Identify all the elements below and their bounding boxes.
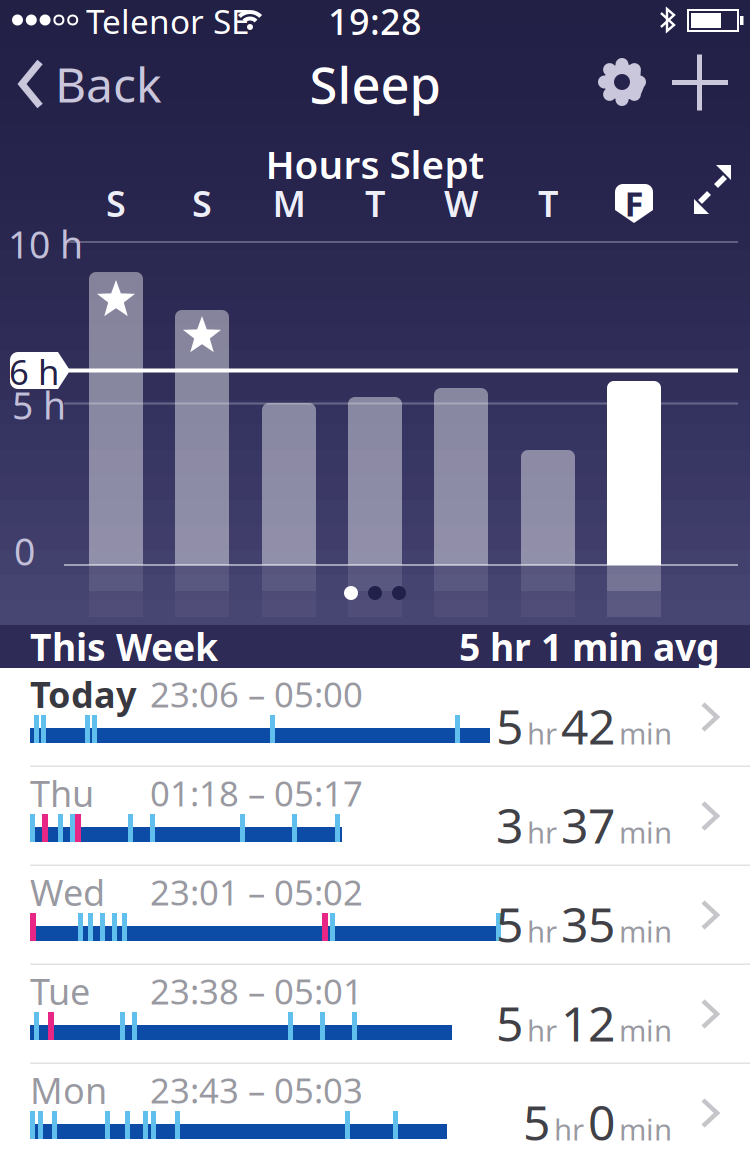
- staticText: 5: [496, 694, 523, 758]
- staticText: Telenor SE: [86, 0, 250, 43]
- staticText: 12: [561, 991, 615, 1055]
- staticText: 23:01 – 05:02: [150, 869, 363, 915]
- staticText: M: [272, 179, 305, 227]
- staticText: 5 hr 1 min avg: [459, 622, 720, 671]
- button[interactable]: Add: [672, 52, 728, 113]
- staticText: min: [619, 1110, 672, 1149]
- staticText: 35: [561, 892, 615, 956]
- staticText: min: [619, 1011, 672, 1050]
- button[interactable]: Wed: [0, 866, 750, 965]
- staticText: 23:38 – 05:01: [150, 968, 363, 1014]
- staticText: This Week: [30, 622, 218, 671]
- staticText: 5: [496, 991, 523, 1055]
- staticText: T: [365, 179, 385, 227]
- staticText: 10 h: [8, 219, 83, 269]
- staticText: Today: [30, 670, 137, 718]
- staticText: 19:28: [328, 0, 422, 45]
- staticText: hr: [527, 912, 557, 951]
- staticText: 42: [561, 694, 615, 758]
- button[interactable]: Expand chart: [694, 162, 734, 218]
- staticText: 5 h: [12, 380, 66, 430]
- staticText: S: [106, 179, 126, 227]
- staticText: hr: [527, 1011, 557, 1050]
- staticText: 6 h: [9, 348, 59, 394]
- staticText: 01:18 – 05:17: [150, 770, 363, 816]
- staticText: Tue: [30, 967, 90, 1015]
- staticText: Back: [55, 52, 162, 116]
- staticText: hr: [527, 714, 557, 753]
- button[interactable]: Back: [0, 0, 180, 90]
- button[interactable]: Today: [0, 668, 750, 767]
- staticText: F: [624, 180, 643, 226]
- staticText: Thu: [30, 769, 94, 817]
- button[interactable]: Tue: [0, 965, 750, 1064]
- staticText: 0: [14, 526, 35, 576]
- staticText: Sleep: [309, 50, 440, 118]
- staticText: hr: [554, 1110, 584, 1149]
- button[interactable]: Settings: [590, 50, 654, 114]
- staticText: Hours Slept: [265, 138, 484, 190]
- staticText: min: [619, 714, 672, 753]
- staticText: W: [444, 179, 478, 227]
- staticText: Wed: [30, 868, 105, 916]
- staticText: 23:06 – 05:00: [150, 671, 363, 717]
- staticText: 0: [588, 1090, 615, 1154]
- staticText: S: [192, 179, 212, 227]
- staticText: min: [619, 912, 672, 951]
- staticText: 3: [496, 793, 523, 857]
- staticText: 23:43 – 05:03: [150, 1067, 363, 1113]
- staticText: Mon: [30, 1066, 107, 1114]
- staticText: min: [619, 813, 672, 852]
- staticText: hr: [527, 813, 557, 852]
- staticText: 37: [561, 793, 615, 857]
- button[interactable]: Thu: [0, 767, 750, 866]
- staticText: T: [538, 179, 558, 227]
- staticText: 5: [496, 892, 523, 956]
- button[interactable]: Mon: [0, 1064, 750, 1158]
- staticText: 5: [523, 1090, 550, 1154]
